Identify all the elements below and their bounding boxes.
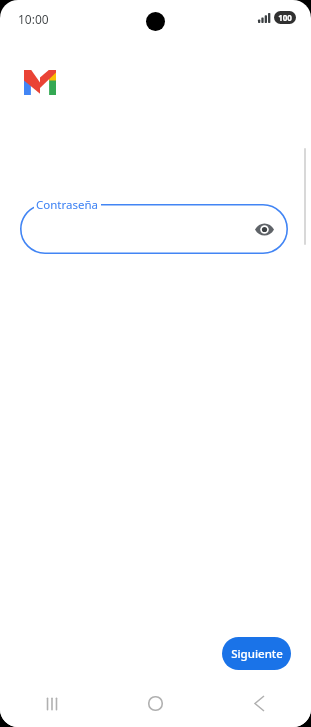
button[interactable]: Recientes (0, 680, 103, 727)
staticText: 100 (278, 12, 292, 23)
button[interactable]: Mostrar contraseña (20, 204, 288, 254)
button[interactable]: Atrás (207, 680, 311, 727)
staticText: Contraseña (36, 197, 99, 213)
button[interactable]: Inicio (103, 680, 207, 727)
staticText: 10:00 (18, 11, 49, 27)
button[interactable]: Siguiente (222, 637, 291, 670)
button[interactable]: Mostrar contraseña (249, 214, 279, 244)
other: Gmail (24, 70, 56, 95)
staticText: Siguiente (231, 646, 283, 662)
